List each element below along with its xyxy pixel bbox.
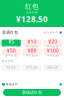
staticText: 最近使用 — [1, 59, 13, 63]
staticText: ¥100 — [47, 47, 59, 54]
staticText: 手气红包 — [5, 45, 17, 48]
button[interactable]: 塞钱进红包 — [3, 89, 61, 96]
staticText: 普通红包 — [2, 30, 18, 35]
staticText: ¥50 — [7, 47, 16, 54]
button[interactable]: ¥88 — [22, 48, 42, 55]
button[interactable]: ¥66.60 — [43, 65, 62, 71]
staticText: 零钱支付 — [6, 83, 18, 86]
staticText: 塞钱进红包 — [22, 90, 42, 95]
staticText: ¥66.60 — [47, 66, 58, 69]
staticText: ¥6.60 — [7, 66, 16, 69]
staticText: 手气红包 — [5, 54, 17, 57]
button[interactable]: ¥20 — [43, 39, 62, 46]
staticText: 当前余额 — [26, 11, 38, 14]
button[interactable]: ¥6.60 — [1, 65, 21, 71]
staticText: 红包 — [25, 2, 39, 11]
staticText: 手气红包 — [47, 54, 59, 57]
staticText: ¥16.60 — [26, 66, 37, 69]
staticText: 改为拼手气 — [43, 31, 58, 34]
staticText: 手气红包 — [47, 45, 59, 48]
button[interactable]: 普通红包 — [0, 27, 64, 38]
button[interactable]: ¥50 — [1, 48, 21, 55]
staticText: 手气红包 — [26, 45, 38, 48]
button[interactable]: ¥5 — [1, 39, 21, 46]
button[interactable]: ¥10 — [22, 39, 42, 46]
staticText: ¥20 — [48, 38, 57, 45]
button[interactable]: ¥16.60 — [22, 65, 42, 71]
staticText: ¥128.50 — [16, 14, 48, 24]
staticText: ¥10 — [27, 38, 36, 45]
staticText: ¥5 — [8, 38, 14, 45]
staticText: 手气红包 — [26, 54, 38, 57]
staticText: ¥88 — [27, 47, 36, 54]
button[interactable]: ¥100 — [43, 48, 62, 55]
